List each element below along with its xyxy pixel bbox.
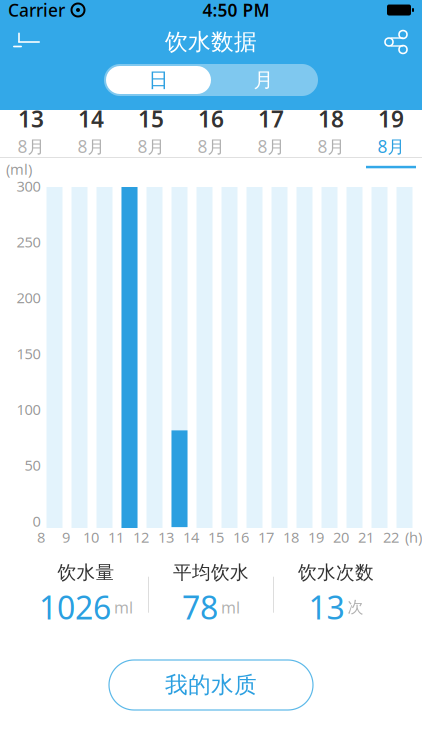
staticText: 21 (358, 527, 374, 547)
button[interactable]: 17 (241, 110, 301, 157)
button[interactable]: 我的水质 (109, 660, 313, 710)
staticText: 10 (83, 527, 99, 547)
button[interactable]: 18 (301, 110, 361, 157)
staticText: 饮水次数 (298, 561, 374, 584)
staticText: 9 (62, 527, 70, 547)
staticText: 8月 (377, 135, 404, 158)
button[interactable]: 日 (106, 66, 211, 94)
button[interactable]: Share (370, 20, 422, 64)
button[interactable]: 16 (181, 110, 241, 157)
staticText: 8月 (17, 135, 44, 158)
staticText: 18 (318, 104, 344, 134)
staticText: 8月 (317, 135, 344, 158)
staticText: 14 (78, 104, 104, 134)
button[interactable]: Back (0, 20, 52, 64)
staticText: 16 (233, 527, 249, 547)
staticText: 16 (198, 104, 224, 134)
staticText: 8月 (77, 135, 104, 158)
staticText: 250 (16, 232, 40, 252)
staticText: 我的水质 (165, 671, 257, 699)
button[interactable]: 14 (61, 110, 121, 157)
staticText: 150 (16, 344, 40, 363)
staticText: 8月 (197, 135, 224, 158)
staticText: 17 (258, 527, 274, 547)
staticText: Carrier (8, 0, 65, 21)
staticText: 13 (18, 104, 44, 134)
staticText: 19 (308, 527, 324, 547)
staticText: 1026 (39, 586, 111, 628)
staticText: 14 (183, 527, 199, 547)
button[interactable]: 19 (361, 110, 421, 157)
staticText: 200 (16, 288, 40, 307)
staticText: 4:50 PM (202, 0, 269, 21)
staticText: 18 (283, 527, 299, 547)
staticText: 11 (108, 527, 124, 547)
staticText: 17 (258, 104, 284, 134)
staticText: 8 (37, 527, 45, 547)
staticText: 13 (308, 586, 344, 628)
staticText: 8月 (137, 135, 164, 158)
staticText: 78 (182, 586, 218, 628)
staticText: 8月 (257, 135, 284, 158)
staticText: 饮水数据 (165, 28, 257, 56)
staticText: 20 (333, 527, 349, 547)
staticText: 100 (16, 400, 40, 419)
button[interactable]: 15 (121, 110, 181, 157)
staticText: 300 (16, 176, 40, 196)
staticText: 月 (253, 68, 273, 92)
staticText: 22 (383, 527, 399, 547)
staticText: 15 (208, 527, 224, 547)
button[interactable]: 13 (1, 110, 61, 157)
staticText: ml (221, 597, 240, 618)
staticText: 次 (347, 597, 363, 617)
staticText: (h) (405, 527, 422, 547)
staticText: 13 (158, 527, 174, 547)
button[interactable]: 月 (211, 66, 316, 94)
staticText: 0 (32, 511, 40, 531)
staticText: 平均饮水 (173, 561, 249, 584)
staticText: 19 (378, 104, 404, 134)
staticText: 50 (24, 455, 40, 475)
staticText: 饮水量 (57, 561, 114, 584)
staticText: 日 (148, 68, 168, 92)
staticText: 12 (133, 527, 149, 547)
staticText: (ml) (6, 159, 32, 179)
staticText: ml (114, 597, 133, 618)
staticText: 15 (138, 104, 164, 134)
